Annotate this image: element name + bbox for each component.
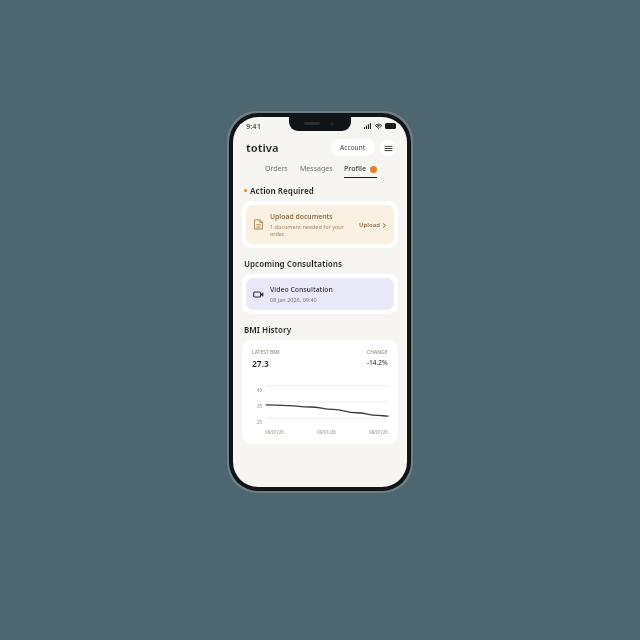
staticText: 25	[257, 419, 263, 425]
staticText: Action Required	[250, 185, 314, 196]
staticText: 35	[257, 403, 263, 409]
staticText: LATEST BMI	[252, 349, 280, 356]
button[interactable]: Messages	[300, 164, 333, 178]
button[interactable]: Video Consultation	[246, 278, 394, 310]
staticText: 09/01/26	[317, 429, 336, 435]
staticText: 1 document needed for your order.	[270, 223, 355, 237]
button[interactable]: totiva	[246, 140, 279, 155]
staticText: Orders	[265, 164, 288, 174]
staticText: Video Consultation	[270, 285, 333, 294]
staticText: 27.3	[252, 358, 269, 370]
staticText: Upload	[359, 221, 380, 229]
staticText: Profile	[344, 164, 367, 174]
staticText: Upload documents	[270, 212, 333, 221]
button[interactable]: LATEST BMI	[242, 340, 398, 444]
staticText: Messages	[300, 164, 333, 174]
staticText: 08/01/26	[369, 429, 388, 435]
staticText: 06/01/26	[265, 429, 284, 435]
staticText: Account	[340, 143, 366, 152]
button[interactable]: Upload documents	[246, 205, 394, 244]
staticText: 45	[257, 387, 263, 393]
button[interactable]: Account	[331, 139, 375, 156]
staticText: -14.2%	[367, 358, 388, 367]
button[interactable]: Profile	[344, 164, 377, 178]
staticText: 08 Jan 2026, 09:40	[270, 296, 317, 303]
staticText: Upcoming Consultations	[244, 258, 343, 269]
staticText: 9:41	[246, 121, 261, 131]
staticText: BMI History	[244, 324, 292, 335]
button[interactable]: Orders	[263, 164, 289, 178]
staticText: CHANGE	[367, 349, 388, 356]
button[interactable]: Menu	[380, 140, 396, 156]
